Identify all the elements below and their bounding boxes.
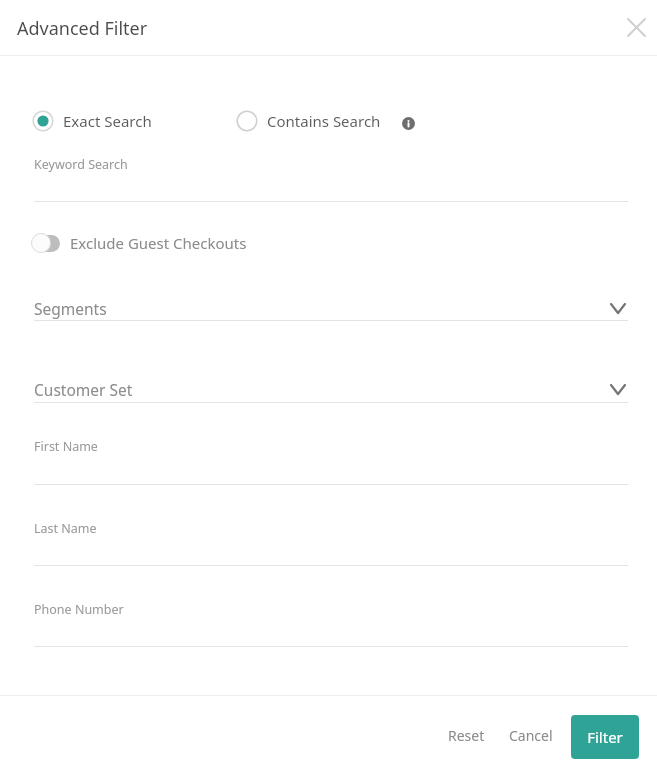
button[interactable]: Exclude Guest Checkouts	[31, 230, 253, 256]
staticText: Segments	[34, 298, 107, 319]
button[interactable]: Filter	[571, 715, 639, 759]
button[interactable]: Cancel	[499, 718, 563, 753]
staticText: Exact Search	[63, 111, 152, 131]
staticText: Phone Number	[34, 601, 124, 618]
staticText: First Name	[34, 438, 98, 455]
button[interactable]: Close	[618, 9, 654, 45]
staticText: Cancel	[509, 726, 553, 745]
button[interactable]: Open Customer Set dropdown	[34, 377, 628, 401]
staticText: Contains Search	[267, 111, 381, 131]
button[interactable]: Reset	[438, 718, 495, 753]
staticText: Filter	[587, 727, 623, 747]
button[interactable]: Information about contains search	[396, 111, 420, 135]
staticText: Keyword Search	[34, 156, 128, 173]
button[interactable]: Open Segments dropdown	[34, 296, 628, 320]
staticText: Exclude Guest Checkouts	[70, 233, 247, 253]
staticText: Last Name	[34, 520, 97, 537]
button[interactable]: Contains Search	[234, 108, 387, 134]
staticText: Customer Set	[34, 379, 133, 400]
button[interactable]: Exact Search	[30, 108, 158, 134]
staticText: Reset	[448, 726, 485, 745]
staticText: Advanced Filter	[17, 16, 148, 41]
